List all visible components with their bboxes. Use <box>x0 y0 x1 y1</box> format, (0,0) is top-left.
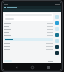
button[interactable]: Colour swatch <box>55 45 59 49</box>
button[interactable]: Colour swatch <box>55 27 59 31</box>
button[interactable]: Back <box>3 6 61 9</box>
button[interactable] <box>4 48 53 51</box>
button[interactable] <box>4 31 53 34</box>
button[interactable]: Colour swatch <box>55 39 59 43</box>
button[interactable]: Colour swatch <box>55 33 59 37</box>
button[interactable]: Back <box>13 64 19 70</box>
button[interactable]: Home <box>29 64 35 70</box>
button[interactable] <box>4 25 53 28</box>
button[interactable] <box>4 22 53 25</box>
button[interactable]: Colour swatch <box>55 15 59 19</box>
button[interactable] <box>4 13 53 21</box>
button[interactable] <box>4 34 53 37</box>
button[interactable] <box>4 42 53 45</box>
button[interactable] <box>4 38 53 41</box>
button[interactable] <box>4 59 53 63</box>
button[interactable] <box>4 45 53 48</box>
button[interactable]: Recent apps <box>45 64 51 70</box>
button[interactable]: Colour swatch <box>55 51 59 55</box>
button[interactable] <box>4 28 53 31</box>
button[interactable]: Colour swatch <box>55 21 59 25</box>
